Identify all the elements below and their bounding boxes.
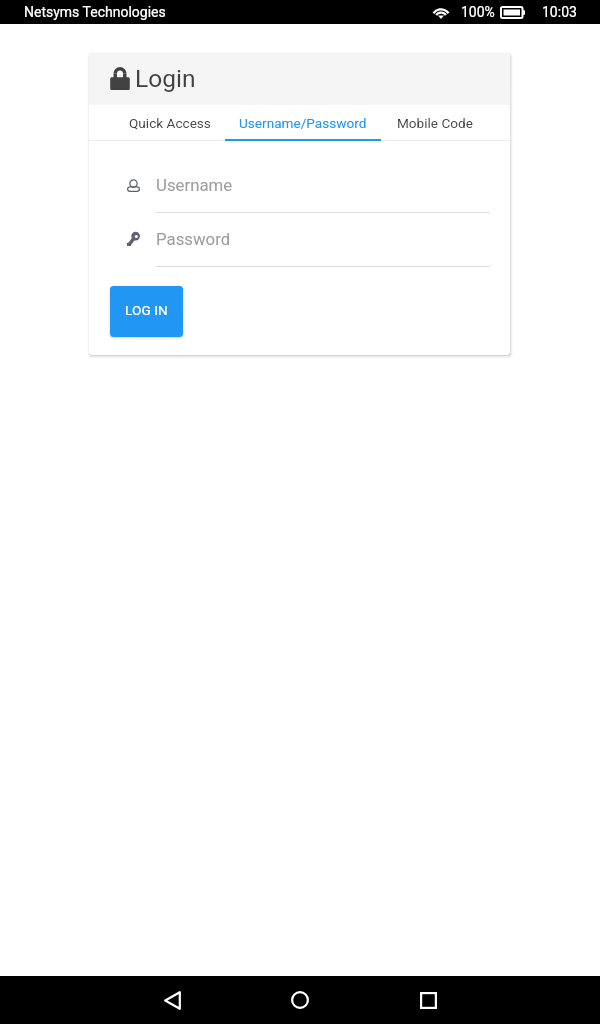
staticText: Netsyms Technologies <box>24 4 166 20</box>
button[interactable]: Username/Password <box>225 105 381 141</box>
button[interactable]: Quick Access <box>115 105 225 141</box>
button[interactable]: LOG IN <box>110 286 183 337</box>
staticText: Login <box>135 64 196 93</box>
staticText: 10:03 <box>542 4 577 20</box>
staticText: Mobile Code <box>397 115 473 131</box>
staticText: Username <box>156 175 233 195</box>
button[interactable]: Home <box>236 976 364 1024</box>
button[interactable]: Back <box>108 976 236 1024</box>
staticText: Password <box>156 229 231 249</box>
staticText: 100% <box>461 4 495 20</box>
staticText: LOG IN <box>125 302 168 318</box>
staticText: Username/Password <box>239 115 367 131</box>
button[interactable]: Mobile Code <box>381 105 489 141</box>
button[interactable]: Recent apps <box>364 976 492 1024</box>
staticText: Quick Access <box>129 115 211 131</box>
